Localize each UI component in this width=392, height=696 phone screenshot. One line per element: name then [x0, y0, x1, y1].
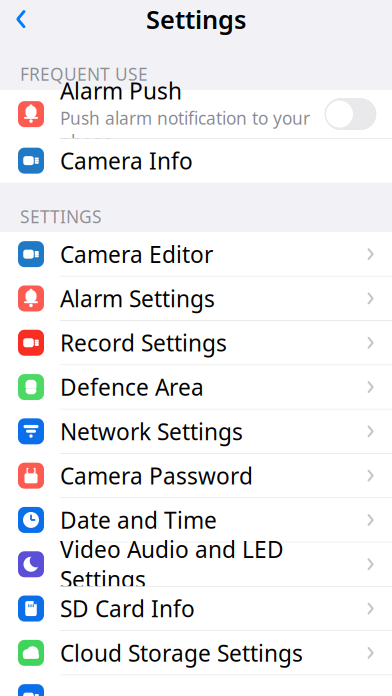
button[interactable]: Video Audio and LED Settings: [0, 542, 392, 586]
button[interactable]: Back: [0, 0, 42, 39]
button[interactable]: [0, 675, 392, 696]
button[interactable]: Cloud Storage Settings: [0, 631, 392, 675]
button[interactable]: Camera Password: [0, 454, 392, 497]
staticText: Push alarm notification to your phone.: [60, 107, 310, 153]
staticText: Video Audio and LED Settings: [60, 534, 284, 594]
staticText: SD Card Info: [60, 593, 195, 624]
staticText: Settings: [146, 2, 246, 36]
button[interactable]: Date and Time: [0, 498, 392, 542]
button[interactable]: Record Settings: [0, 321, 392, 364]
staticText: Camera Info: [60, 146, 193, 176]
staticText: Camera Editor: [60, 239, 213, 269]
staticText: Record Settings: [60, 328, 227, 358]
button[interactable]: SD Card Info: [0, 587, 392, 630]
button[interactable]: Network Settings: [0, 410, 392, 453]
staticText: Camera Password: [60, 461, 253, 491]
staticText: Date and Time: [60, 505, 217, 535]
button[interactable]: Defence Area: [0, 365, 392, 409]
staticText: Alarm Push: [60, 75, 182, 106]
staticText: Network Settings: [60, 416, 243, 446]
staticText: SETTINGS: [20, 205, 102, 228]
staticText: Alarm Settings: [60, 283, 215, 313]
staticText: Defence Area: [60, 372, 204, 402]
button[interactable]: Alarm Push: [0, 90, 392, 138]
staticText: FREQUENT USE: [20, 63, 148, 86]
button[interactable]: Camera Info: [0, 139, 392, 182]
button[interactable]: Camera Editor: [0, 232, 392, 276]
button[interactable]: Alarm Settings: [0, 277, 392, 320]
staticText: Cloud Storage Settings: [60, 638, 303, 668]
